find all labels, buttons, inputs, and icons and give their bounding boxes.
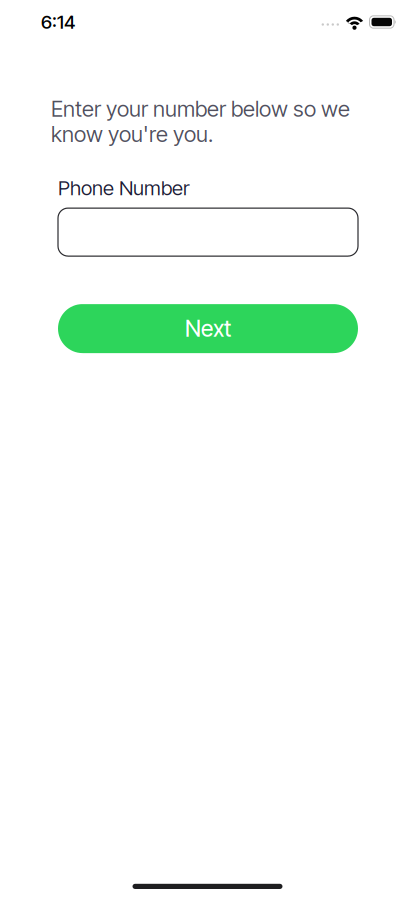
- staticText: Enter your number below so we know you'r…: [51, 96, 350, 147]
- button[interactable]: Next: [58, 304, 358, 353]
- staticText: 6:14: [41, 11, 75, 33]
- button[interactable]: Phone Number: [58, 208, 358, 256]
- staticText: Next: [185, 315, 231, 342]
- staticText: Phone Number: [58, 176, 190, 200]
